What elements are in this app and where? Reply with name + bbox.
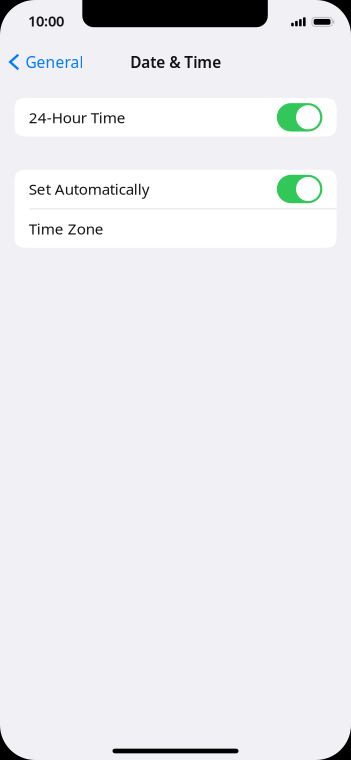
staticText: 10:00 [28, 11, 64, 31]
staticText: Date & Time [130, 52, 221, 72]
staticText: Set Automatically [29, 179, 150, 199]
staticText: Time Zone [29, 218, 104, 239]
button[interactable]: Time Zone [14, 209, 337, 248]
staticText: General [25, 51, 83, 73]
button[interactable]: General [1, 41, 91, 83]
staticText: 24-Hour Time [29, 107, 126, 128]
button[interactable]: Set Automatically [14, 170, 337, 208]
button[interactable]: 24-Hour Time [14, 98, 337, 137]
